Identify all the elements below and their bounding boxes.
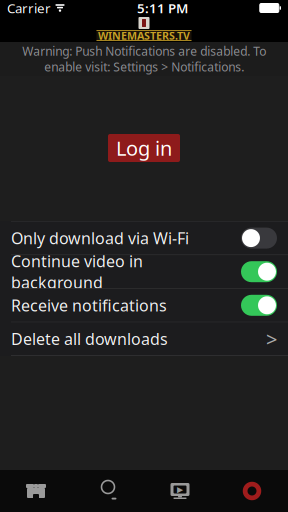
staticText: Only download via Wi-Fi [11,227,189,249]
staticText: Carrier [7,0,51,17]
button[interactable]: Receive notifications [0,289,288,322]
button[interactable]: Search [72,470,144,512]
button[interactable]: Home [0,470,72,512]
button[interactable]: Settings [216,470,288,512]
staticText: Delete all downloads [11,328,168,349]
staticText: ▶ [177,485,183,494]
button[interactable]: Videos [144,470,216,512]
staticText: Warning: Push Notifications are disabled… [22,43,266,75]
button[interactable]: Only download via Wi-Fi [0,222,288,255]
staticText: 5:11 PM [137,0,188,17]
staticText: Continue video in background [11,250,143,293]
staticText: WINEMASTERS.TV [98,28,190,43]
staticText: Receive notifications [11,295,167,316]
staticText: Log in [116,135,172,161]
button[interactable]: Log in [108,134,180,162]
button[interactable]: Delete all downloads [0,322,288,355]
button[interactable]: Continue video in background [0,255,288,288]
staticText: > [266,326,277,352]
